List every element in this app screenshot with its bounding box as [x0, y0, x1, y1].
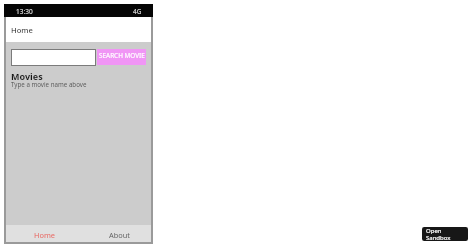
button[interactable]: Home [4, 225, 78, 244]
button[interactable]: Movie name input [11, 49, 96, 66]
staticText: Type a movie name above [11, 80, 87, 88]
button[interactable]: SEARCH MOVIE [97, 49, 146, 65]
button[interactable]: About [78, 225, 153, 244]
staticText: Home [34, 230, 56, 240]
staticText: Movies [11, 70, 43, 82]
staticText: SEARCH MOVIE [99, 51, 145, 60]
staticText: About [109, 230, 130, 240]
staticText: Home [11, 25, 33, 35]
staticText: 13:30 [16, 7, 33, 16]
staticText: Open Sandbox [426, 227, 451, 241]
staticText: 4G [133, 7, 142, 16]
button[interactable]: Open Sandbox [422, 227, 468, 241]
